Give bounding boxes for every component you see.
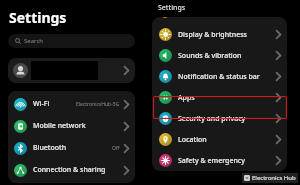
button[interactable]: Display & brightness bbox=[152, 24, 287, 45]
button[interactable]: Security and privacy bbox=[152, 108, 287, 129]
button[interactable]: Apps bbox=[152, 87, 287, 108]
staticText: Off bbox=[112, 145, 120, 152]
staticText: Wi-Fi bbox=[33, 99, 76, 109]
button[interactable]: Safety & emergency bbox=[152, 150, 287, 171]
staticText: Notification & status bar bbox=[178, 72, 275, 82]
staticText: Display & brightness bbox=[178, 30, 275, 40]
staticText: Mobile network bbox=[33, 121, 123, 131]
button[interactable]: Notification & status bar bbox=[152, 66, 287, 87]
button[interactable]: Location bbox=[152, 129, 287, 150]
staticText: ElectronicsHub-5G bbox=[76, 101, 120, 108]
staticText: Settings bbox=[9, 8, 67, 27]
staticText: Security and privacy bbox=[178, 114, 275, 124]
staticText: Location bbox=[178, 135, 275, 145]
staticText: Safety & emergency bbox=[178, 156, 275, 166]
button[interactable]: Bluetooth bbox=[8, 137, 135, 159]
staticText: Sounds & vibration bbox=[178, 51, 275, 61]
staticText: Connection & sharing bbox=[33, 165, 123, 175]
staticText: Bluetooth bbox=[33, 143, 112, 153]
button[interactable]: Connection & sharing bbox=[8, 159, 135, 181]
button[interactable] bbox=[8, 58, 135, 83]
staticText: Apps bbox=[178, 93, 275, 103]
staticText: Electronics Hub bbox=[252, 174, 296, 182]
button[interactable]: Search bbox=[8, 34, 135, 48]
button[interactable]: Mobile network bbox=[8, 115, 135, 137]
button[interactable]: Sounds & vibration bbox=[152, 45, 287, 66]
staticText: Search bbox=[24, 37, 43, 45]
button[interactable]: Wi-Fi bbox=[8, 93, 135, 115]
staticText: Settings bbox=[158, 3, 186, 13]
